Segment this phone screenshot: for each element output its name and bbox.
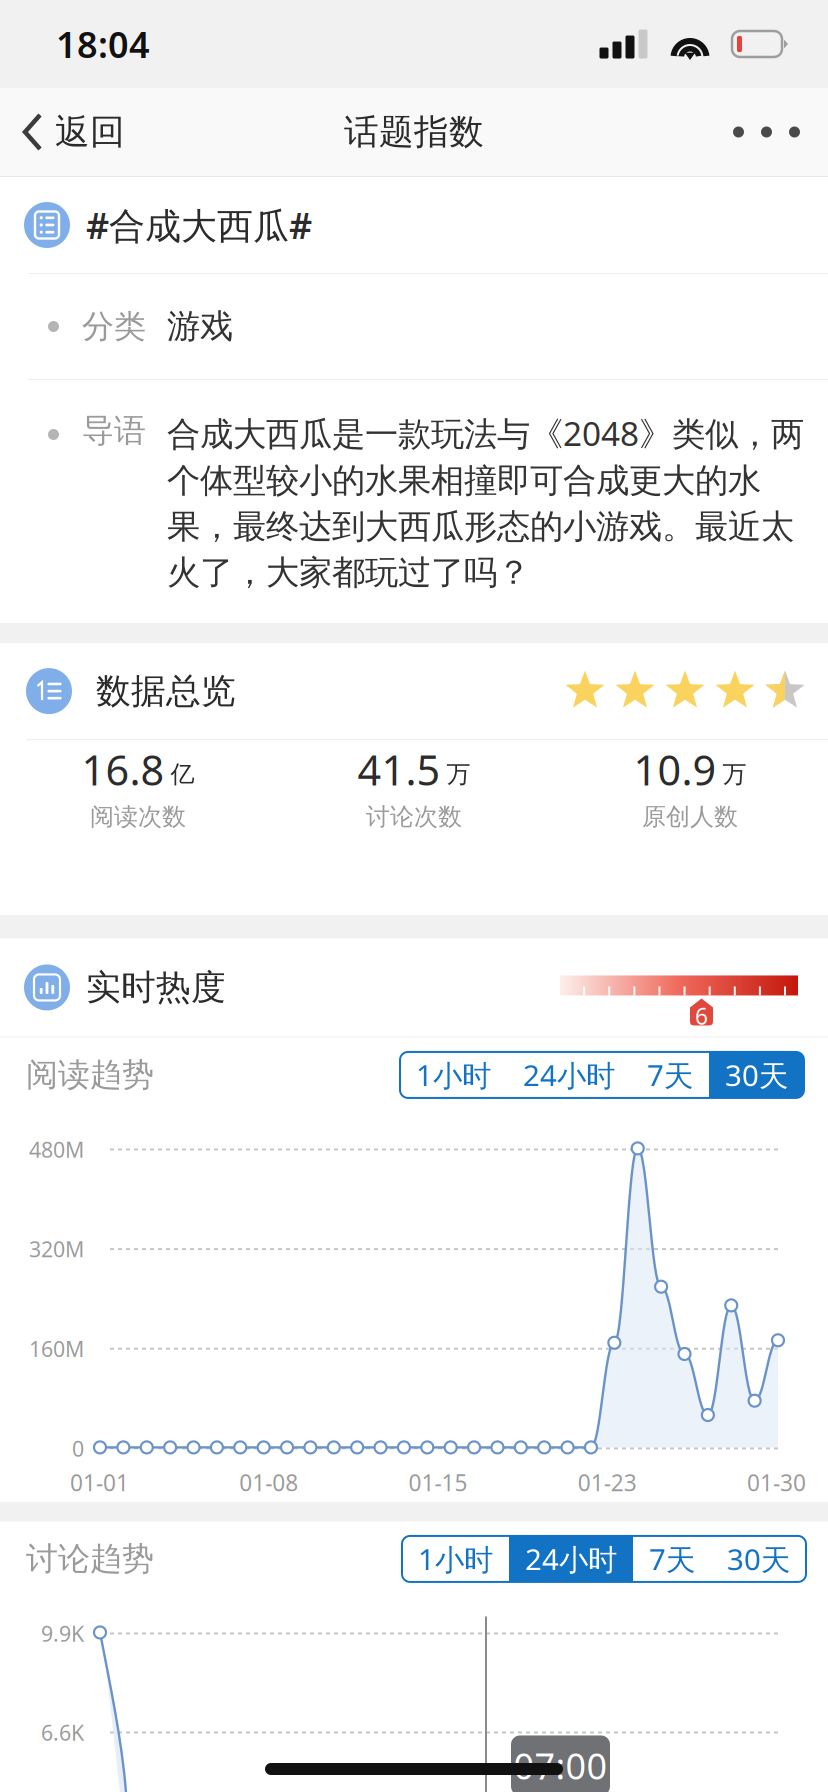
- button[interactable]: 24小时: [509, 1536, 633, 1582]
- staticText: 阅读趋势: [26, 1055, 154, 1095]
- staticText: 实时热度: [86, 966, 226, 1009]
- staticText: 30天: [727, 1539, 790, 1578]
- staticText: #合成大西瓜#: [86, 201, 312, 249]
- button[interactable]: 1小时: [402, 1536, 509, 1582]
- staticText: 1小时: [416, 1055, 491, 1094]
- staticText: 讨论趋势: [26, 1539, 154, 1579]
- staticText: 游戏: [167, 306, 233, 347]
- staticText: 9.9K: [41, 1619, 84, 1648]
- staticText: 07:00: [513, 1742, 607, 1789]
- staticText: 30天: [725, 1055, 788, 1094]
- staticText: 导语: [82, 411, 146, 450]
- staticText: 亿: [170, 759, 194, 789]
- staticText: 讨论次数: [366, 802, 462, 831]
- button[interactable]: 7天: [631, 1052, 709, 1098]
- staticText: 480M: [29, 1135, 84, 1163]
- staticText: 01-30: [747, 1467, 806, 1497]
- staticText: 1小时: [418, 1539, 493, 1578]
- staticText: 万: [446, 759, 470, 789]
- button[interactable]: More options: [705, 88, 828, 176]
- staticText: 0: [72, 1434, 84, 1462]
- button[interactable]: 24小时: [507, 1052, 631, 1098]
- staticText: 阅读次数: [90, 802, 186, 831]
- staticText: 合成大西瓜是一款玩法与《2048》类似，两个体型较小的水果相撞即可合成更大的水果…: [167, 411, 804, 593]
- staticText: 160M: [29, 1335, 84, 1363]
- staticText: 01-08: [239, 1467, 298, 1497]
- staticText: 数据总览: [96, 670, 236, 712]
- staticText: 18:04: [56, 20, 150, 68]
- staticText: 01-01: [70, 1467, 129, 1497]
- button[interactable]: 30天: [709, 1052, 804, 1098]
- staticText: 万: [722, 759, 746, 789]
- staticText: 原创人数: [642, 802, 738, 831]
- button[interactable]: 1小时: [400, 1052, 507, 1098]
- staticText: 24小时: [523, 1055, 615, 1094]
- staticText: 320M: [29, 1235, 84, 1263]
- button[interactable]: 返回: [0, 88, 141, 176]
- staticText: 分类: [82, 307, 146, 346]
- staticText: 10.9: [633, 742, 716, 797]
- staticText: 话题指数: [344, 111, 484, 153]
- button[interactable]: 30天: [711, 1536, 806, 1582]
- staticText: 16.8: [81, 742, 164, 797]
- staticText: 01-23: [578, 1467, 637, 1497]
- staticText: 返回: [55, 111, 125, 153]
- staticText: 01-15: [408, 1467, 467, 1497]
- staticText: 7天: [647, 1055, 693, 1094]
- staticText: 24小时: [525, 1539, 617, 1578]
- button[interactable]: 7天: [633, 1536, 711, 1582]
- staticText: 6: [695, 1001, 708, 1031]
- staticText: 41.5: [357, 742, 440, 797]
- staticText: 7天: [649, 1539, 695, 1578]
- staticText: 6.6K: [41, 1718, 84, 1747]
